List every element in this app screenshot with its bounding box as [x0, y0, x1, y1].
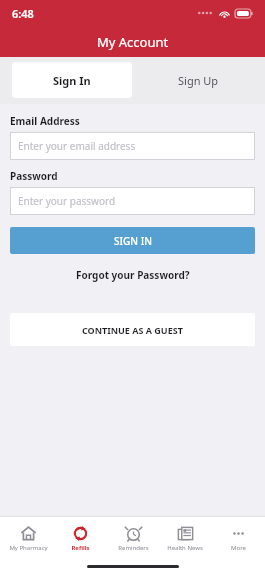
- staticText: Refills: [71, 544, 90, 552]
- staticText: Sign In: [53, 73, 91, 88]
- button[interactable]: CONTINUE AS A GUEST: [10, 313, 255, 346]
- staticText: Health News: [167, 544, 203, 552]
- button[interactable]: Refills: [55, 525, 105, 552]
- staticText: Email Address: [10, 114, 80, 128]
- staticText: Reminders: [118, 544, 149, 552]
- staticText: More: [231, 544, 246, 552]
- button[interactable]: Enter your email address: [10, 132, 255, 160]
- button[interactable]: Reminders: [108, 525, 158, 552]
- button[interactable]: Health News: [160, 525, 210, 552]
- staticText: Sign Up: [178, 73, 219, 88]
- staticText: SIGN IN: [114, 234, 152, 248]
- button[interactable]: SIGN IN: [10, 227, 255, 254]
- staticText: Forgot your Password?: [76, 268, 190, 282]
- button[interactable]: Sign Up: [132, 57, 265, 104]
- staticText: CONTINUE AS A GUEST: [82, 324, 183, 336]
- button[interactable]: Forgot your Password?: [10, 268, 255, 282]
- staticText: Enter your password: [18, 194, 116, 208]
- staticText: 6:48: [12, 6, 34, 21]
- staticText: Password: [10, 169, 58, 183]
- button[interactable]: More: [213, 525, 263, 552]
- staticText: My Pharmacy: [9, 544, 48, 552]
- button[interactable]: My Pharmacy: [3, 525, 53, 552]
- button[interactable]: Sign In: [12, 62, 132, 98]
- staticText: Enter your email address: [18, 139, 136, 153]
- button[interactable]: Enter your password: [10, 187, 255, 215]
- staticText: My Account: [97, 33, 169, 51]
